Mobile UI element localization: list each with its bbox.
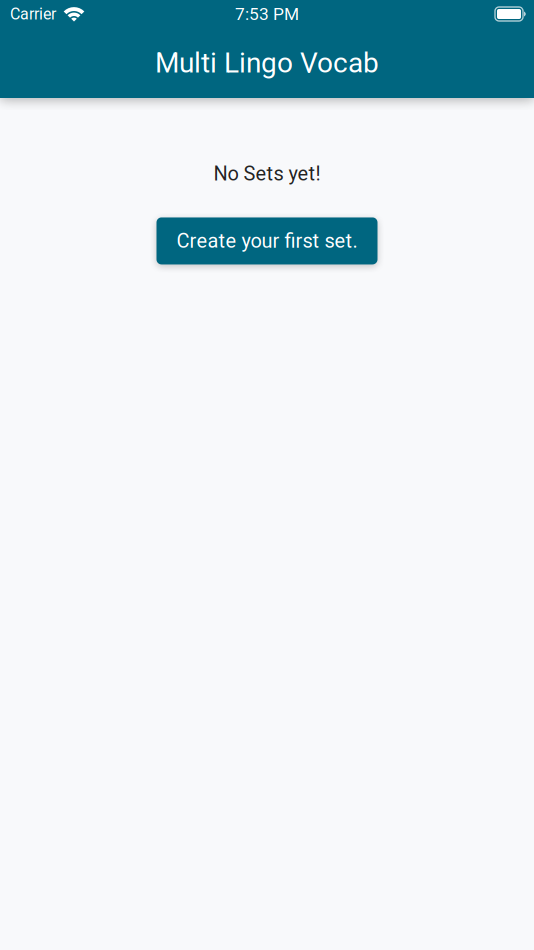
button[interactable]: Create your first set. [156, 217, 377, 264]
staticText: No Sets yet! [213, 162, 320, 185]
staticText: Multi Lingo Vocab [155, 47, 379, 79]
staticText: Carrier [10, 5, 56, 23]
staticText: 7:53 PM [235, 4, 299, 24]
staticText: Create your first set. [176, 229, 357, 253]
